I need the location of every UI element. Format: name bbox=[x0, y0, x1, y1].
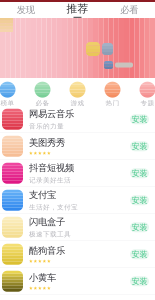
button[interactable]: 必备 bbox=[29, 82, 56, 107]
button[interactable]: 热门 bbox=[99, 82, 126, 107]
button[interactable]: 安装 bbox=[130, 114, 149, 124]
staticText: 记录美好生活 bbox=[29, 176, 71, 184]
button[interactable]: 榜单 bbox=[0, 82, 21, 107]
button[interactable]: 小黄车 bbox=[0, 268, 155, 295]
button[interactable]: 推荐 bbox=[52, 2, 103, 18]
staticText: 安装 bbox=[131, 168, 147, 178]
button[interactable]: 支付宝 bbox=[0, 187, 155, 214]
staticText: 热门 bbox=[105, 99, 119, 107]
button[interactable]: 必看 bbox=[103, 4, 155, 16]
button[interactable]: 游戏 bbox=[64, 82, 91, 107]
button[interactable]: 专题 bbox=[134, 82, 155, 107]
button[interactable]: 美图秀秀 bbox=[0, 133, 155, 160]
staticText: 专题 bbox=[140, 99, 154, 107]
button[interactable]: 闪电盒子 bbox=[0, 214, 155, 241]
staticText: 安装 bbox=[131, 141, 147, 151]
button[interactable]: 安装 bbox=[130, 276, 149, 286]
staticText: 小黄车 bbox=[29, 272, 56, 283]
staticText: 必看 bbox=[120, 4, 138, 16]
button[interactable]: 安装 bbox=[130, 249, 149, 259]
staticText: 安装 bbox=[131, 249, 147, 259]
staticText: 安装 bbox=[131, 276, 147, 286]
staticText: 游戏 bbox=[70, 99, 84, 107]
staticText: 安装 bbox=[131, 195, 147, 205]
staticText: 网易云音乐 bbox=[29, 108, 74, 120]
button[interactable]: 安装 bbox=[130, 168, 149, 178]
staticText: 安装 bbox=[131, 222, 147, 232]
button[interactable]: 酷狗音乐 bbox=[0, 241, 155, 268]
staticText: 酷狗音乐 bbox=[29, 245, 65, 256]
staticText: 发现 bbox=[17, 4, 35, 16]
staticText: 音乐的力量 bbox=[29, 122, 64, 130]
button[interactable]: 安装 bbox=[130, 141, 149, 151]
staticText: 生活好，支付宝 bbox=[29, 203, 78, 211]
button[interactable]: 安装 bbox=[130, 195, 149, 205]
button[interactable]: 安装 bbox=[130, 222, 149, 232]
staticText: 抖音短视频 bbox=[29, 162, 74, 174]
button[interactable]: 抖音短视频 bbox=[0, 160, 155, 187]
staticText: 极速下载工具 bbox=[29, 230, 71, 238]
staticText: 安装 bbox=[131, 114, 147, 124]
staticText: 美图秀秀 bbox=[29, 137, 65, 148]
staticText: 榜单 bbox=[0, 99, 14, 107]
staticText: 推荐 bbox=[66, 2, 88, 15]
staticText: 闪电盒子 bbox=[29, 216, 65, 228]
button[interactable]: 网易云音乐 bbox=[0, 106, 155, 133]
staticText: 必备 bbox=[35, 99, 49, 107]
button[interactable]: 发现 bbox=[0, 4, 52, 16]
staticText: 支付宝 bbox=[29, 189, 56, 201]
